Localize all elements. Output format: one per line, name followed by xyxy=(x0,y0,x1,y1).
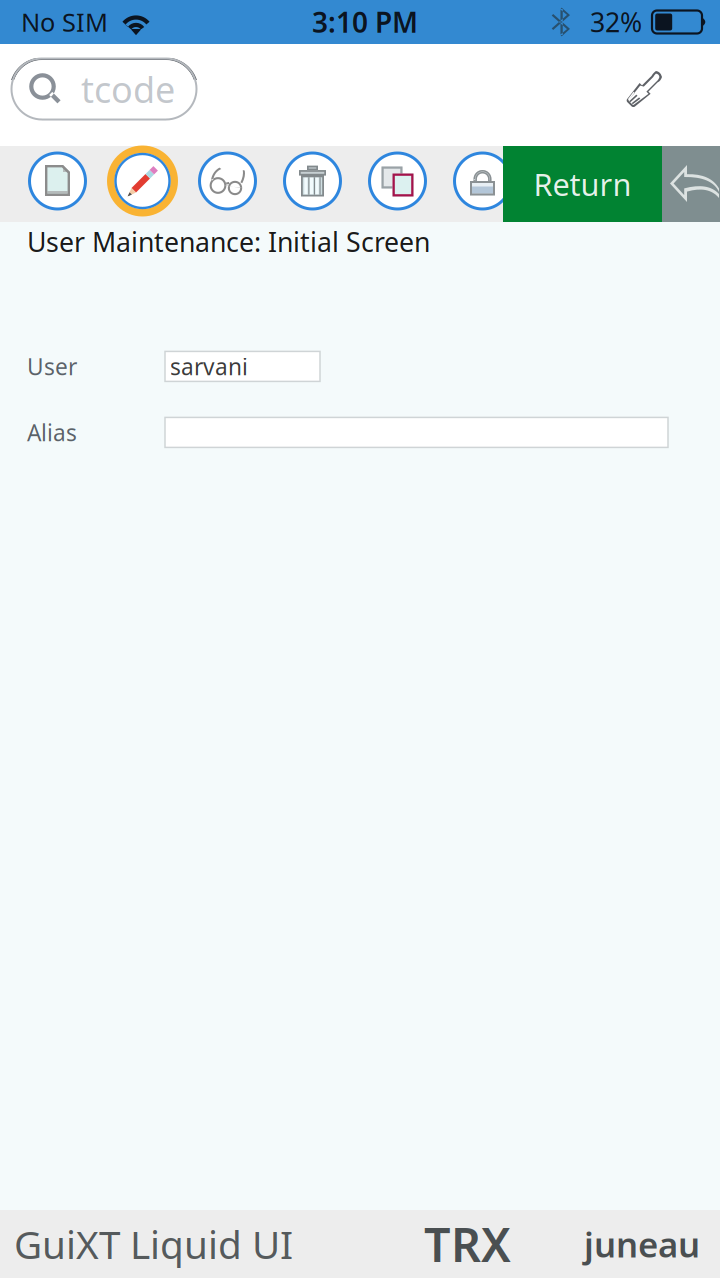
staticText: juneau xyxy=(584,1221,700,1267)
button[interactable]: Back xyxy=(662,146,720,222)
staticText: User xyxy=(27,351,77,381)
staticText: 32% xyxy=(590,4,642,40)
button[interactable]: Display xyxy=(192,148,263,219)
staticText: sarvani xyxy=(170,351,248,381)
staticText: No SIM xyxy=(21,5,108,39)
button[interactable]: Lock xyxy=(447,148,518,219)
staticText: TRX xyxy=(424,1213,511,1275)
button[interactable]: Tools xyxy=(617,61,673,117)
staticText: Return xyxy=(533,164,631,204)
staticText: tcode xyxy=(81,65,175,113)
staticText: User Maintenance: Initial Screen xyxy=(27,224,430,259)
button[interactable]: New xyxy=(22,148,93,219)
button[interactable]: Edit xyxy=(107,148,178,219)
staticText: 3:10 PM xyxy=(312,3,418,41)
button[interactable]: Copy xyxy=(362,148,433,219)
button[interactable]: Delete xyxy=(277,148,348,219)
staticText: Alias xyxy=(27,417,77,447)
button[interactable]: Return xyxy=(503,146,662,222)
staticText: GuiXT Liquid UI xyxy=(14,1218,293,1270)
button[interactable]: tcode xyxy=(11,58,197,120)
